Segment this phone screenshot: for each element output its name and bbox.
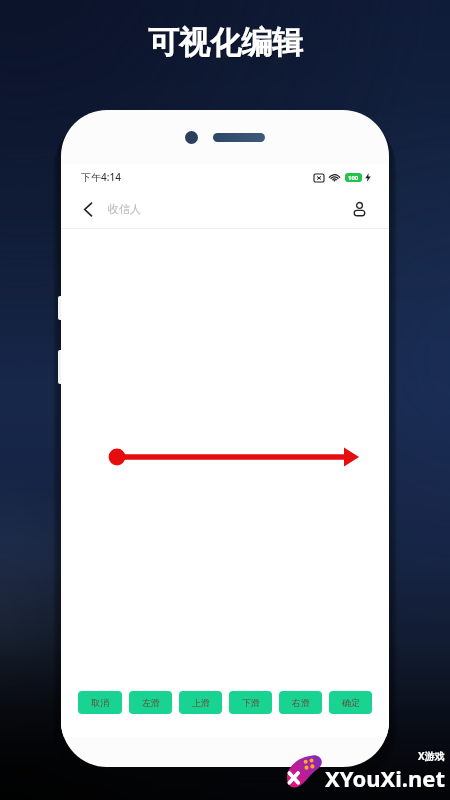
staticText: 可视化编辑	[149, 24, 304, 63]
staticText: 左滑	[142, 697, 160, 708]
button[interactable]: 联系人	[345, 195, 373, 223]
staticText: 取消	[91, 697, 109, 708]
staticText: 上滑	[192, 697, 210, 708]
button[interactable]: 下滑	[229, 691, 272, 714]
button[interactable]: 上滑	[179, 691, 222, 714]
button[interactable]: 确定	[329, 691, 372, 714]
button[interactable]: 返回	[75, 196, 101, 222]
button[interactable]: 右滑	[279, 691, 322, 714]
staticText: 下滑	[242, 697, 260, 708]
staticText: X游戏	[418, 749, 445, 763]
staticText: 下午4:14	[81, 170, 121, 184]
button[interactable]: 取消	[78, 691, 122, 714]
button[interactable]: 左滑	[129, 691, 172, 714]
staticText: 可视化编辑	[148, 23, 303, 62]
staticText: XYouXi.net	[325, 763, 445, 793]
staticText: 右滑	[292, 697, 310, 708]
staticText: 100	[348, 174, 359, 182]
staticText: 收信人	[108, 202, 141, 216]
staticText: 确定	[342, 697, 360, 708]
